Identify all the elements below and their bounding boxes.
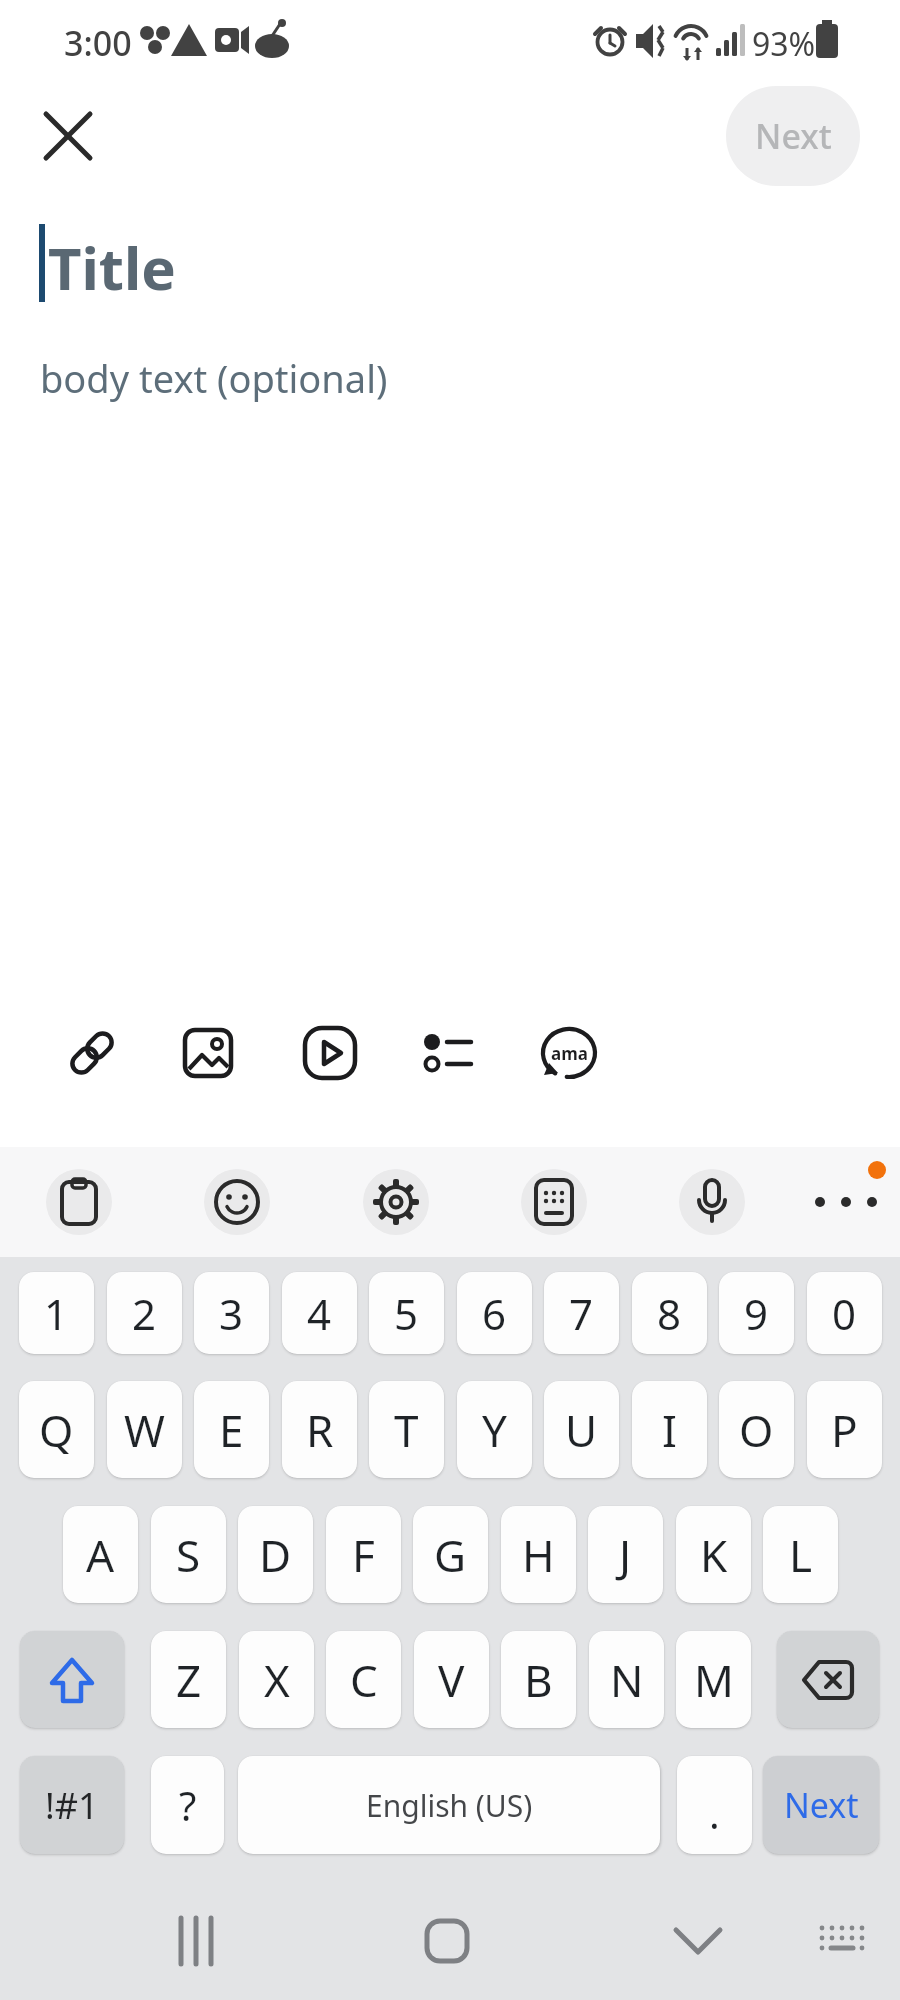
staticText: 2	[132, 1285, 157, 1342]
staticText: Y	[482, 1400, 507, 1460]
staticText: T	[394, 1400, 419, 1460]
button[interactable]: N	[589, 1631, 664, 1728]
button[interactable]	[298, 1021, 362, 1085]
button[interactable]: G	[413, 1506, 488, 1603]
staticText: 3:00	[64, 20, 132, 66]
button[interactable]	[416, 1021, 480, 1085]
button[interactable]: 5	[369, 1272, 444, 1354]
staticText: X	[264, 1650, 290, 1710]
button[interactable]: V	[414, 1631, 489, 1728]
staticText: A	[86, 1525, 115, 1585]
staticText: G	[434, 1525, 467, 1585]
staticText: J	[619, 1525, 632, 1585]
button[interactable]	[679, 1169, 745, 1235]
button[interactable]: .	[677, 1756, 752, 1854]
button[interactable]: O	[719, 1381, 794, 1478]
button[interactable]: Q	[19, 1381, 94, 1478]
button[interactable]: L	[763, 1506, 838, 1603]
button[interactable]: P	[807, 1381, 882, 1478]
button[interactable]: M	[676, 1631, 751, 1728]
staticText: !#1	[45, 1781, 99, 1830]
button[interactable]: J	[588, 1506, 663, 1603]
staticText: 3	[219, 1285, 244, 1342]
staticText: Next	[784, 1782, 859, 1828]
staticText: B	[524, 1650, 553, 1710]
button[interactable]	[800, 1170, 892, 1234]
button[interactable]	[20, 1631, 124, 1728]
staticText: 7	[569, 1285, 594, 1342]
button[interactable]	[204, 1169, 270, 1235]
button[interactable]: I	[632, 1381, 707, 1478]
button[interactable]	[46, 1169, 112, 1235]
staticText: 9	[744, 1285, 769, 1342]
button[interactable]	[176, 1021, 240, 1085]
button[interactable]: 0	[807, 1272, 882, 1354]
button[interactable]: Next	[726, 86, 860, 186]
staticText: ?	[179, 1778, 197, 1832]
staticText: body text (optional)	[40, 352, 388, 404]
staticText: 1	[44, 1285, 69, 1342]
button[interactable]	[521, 1169, 587, 1235]
staticText: O	[739, 1400, 774, 1460]
button[interactable]: 9	[719, 1272, 794, 1354]
button[interactable]	[60, 1021, 124, 1085]
staticText: 6	[482, 1285, 507, 1342]
staticText: E	[219, 1400, 244, 1460]
staticText: L	[789, 1525, 813, 1585]
staticText: M	[694, 1650, 734, 1710]
button[interactable]: !#1	[20, 1756, 124, 1854]
button[interactable]	[40, 108, 96, 164]
button[interactable]	[658, 1902, 738, 1982]
staticText: D	[259, 1525, 292, 1585]
button[interactable]: C	[326, 1631, 401, 1728]
staticText: R	[306, 1400, 334, 1460]
staticText: Z	[176, 1650, 202, 1710]
button[interactable]: 8	[632, 1272, 707, 1354]
staticText: 93%	[752, 22, 816, 66]
button[interactable]	[156, 1902, 236, 1982]
button[interactable]: ?	[151, 1756, 224, 1854]
button[interactable]: H	[501, 1506, 576, 1603]
button[interactable]: Z	[151, 1631, 226, 1728]
staticText: 4	[307, 1285, 332, 1342]
button[interactable]	[812, 1910, 872, 1970]
button[interactable]: W	[107, 1381, 182, 1478]
button[interactable]: F	[326, 1506, 401, 1603]
button[interactable]	[363, 1169, 429, 1235]
button[interactable]: A	[63, 1506, 138, 1603]
staticText: V	[438, 1650, 465, 1710]
staticText: Title	[48, 228, 176, 307]
button[interactable]: 6	[457, 1272, 532, 1354]
staticText: K	[700, 1525, 728, 1585]
button[interactable]: D	[238, 1506, 313, 1603]
button[interactable]: 1	[19, 1272, 94, 1354]
staticText: N	[610, 1650, 644, 1710]
button[interactable]: B	[501, 1631, 576, 1728]
button[interactable]: Next	[763, 1756, 879, 1854]
staticText: 0	[832, 1285, 857, 1342]
button[interactable]	[777, 1631, 879, 1728]
button[interactable]: K	[676, 1506, 751, 1603]
staticText: P	[831, 1400, 858, 1460]
button[interactable]: 3	[194, 1272, 269, 1354]
button[interactable]: X	[239, 1631, 314, 1728]
button[interactable]: R	[282, 1381, 357, 1478]
staticText: W	[124, 1400, 165, 1460]
button[interactable]: T	[369, 1381, 444, 1478]
button[interactable]	[407, 1902, 487, 1982]
staticText: H	[522, 1525, 555, 1585]
staticText: C	[350, 1650, 378, 1710]
button[interactable]: S	[151, 1506, 226, 1603]
button[interactable]: 4	[282, 1272, 357, 1354]
button[interactable]: English (US)	[238, 1756, 660, 1854]
button[interactable]: ama	[537, 1021, 601, 1085]
button[interactable]: 2	[107, 1272, 182, 1354]
button[interactable]: U	[544, 1381, 619, 1478]
staticText: English (US)	[366, 1785, 533, 1826]
button[interactable]: Y	[457, 1381, 532, 1478]
button[interactable]: E	[194, 1381, 269, 1478]
staticText: ama	[551, 1042, 588, 1065]
staticText: 5	[394, 1285, 419, 1342]
staticText: Next	[755, 113, 832, 159]
button[interactable]: 7	[544, 1272, 619, 1354]
